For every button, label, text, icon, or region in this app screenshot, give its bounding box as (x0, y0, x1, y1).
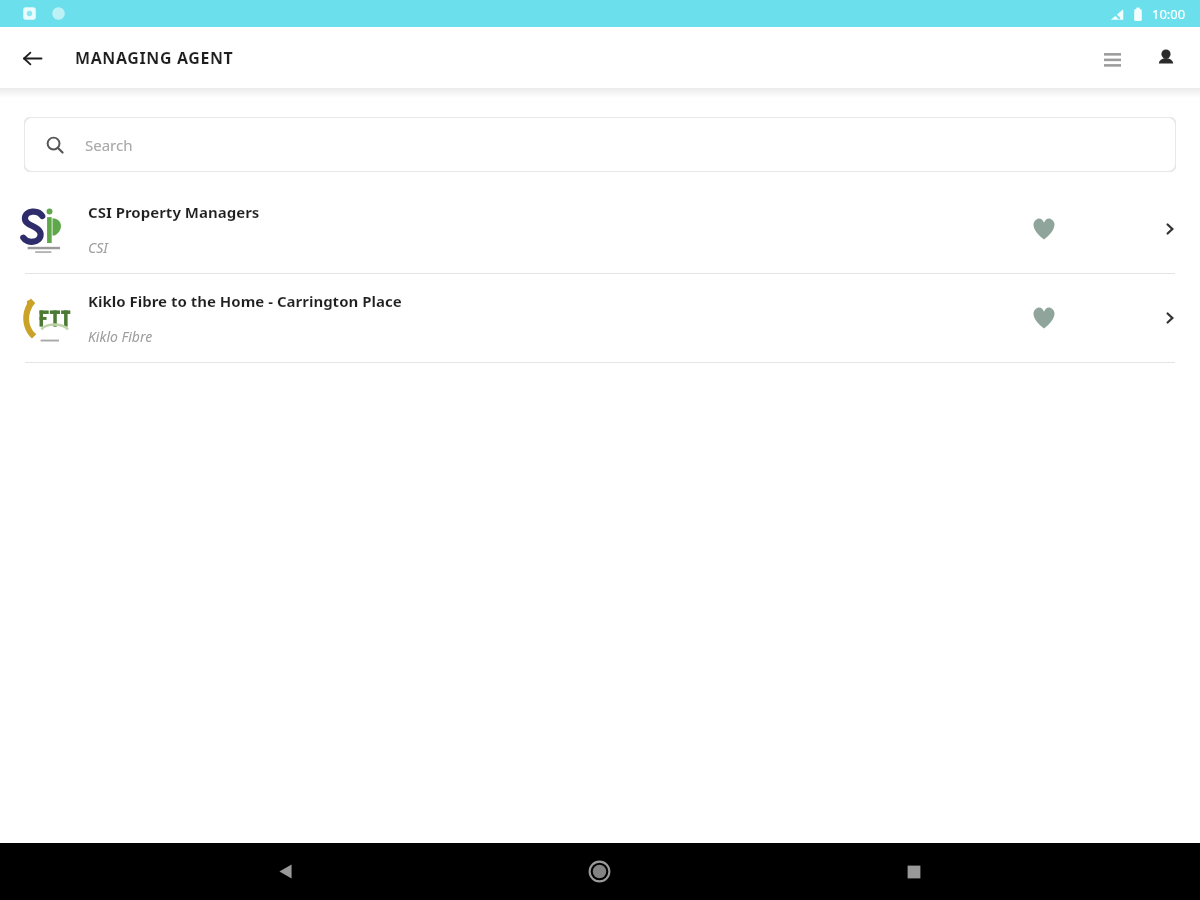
button[interactable]: Account (1144, 36, 1188, 80)
button[interactable]: Kiklo Fibre to the Home - Carrington Pla… (0, 274, 1200, 362)
staticText: CSI Property Managers (88, 202, 260, 222)
button[interactable]: Favourite (1016, 290, 1072, 346)
staticText: Search (85, 135, 133, 155)
button[interactable]: Search (24, 117, 1176, 172)
staticText: Kiklo Fibre to the Home - Carrington Pla… (88, 291, 402, 311)
button[interactable]: Open details (1146, 206, 1192, 252)
button[interactable]: Home (570, 843, 628, 900)
staticText: Kiklo Fibre (88, 327, 153, 346)
staticText: 10:00 (1152, 5, 1186, 23)
staticText: CSI (88, 238, 108, 257)
button[interactable]: Back (256, 843, 314, 900)
button[interactable]: Recent apps (885, 843, 943, 900)
staticText: MANAGING AGENT (75, 47, 234, 69)
button[interactable]: Favourite (1016, 201, 1072, 257)
button[interactable]: List options (1090, 36, 1134, 80)
button[interactable]: Open details (1146, 295, 1192, 341)
button[interactable]: CSI Property Managers (0, 185, 1200, 273)
button[interactable]: Back (10, 36, 54, 80)
